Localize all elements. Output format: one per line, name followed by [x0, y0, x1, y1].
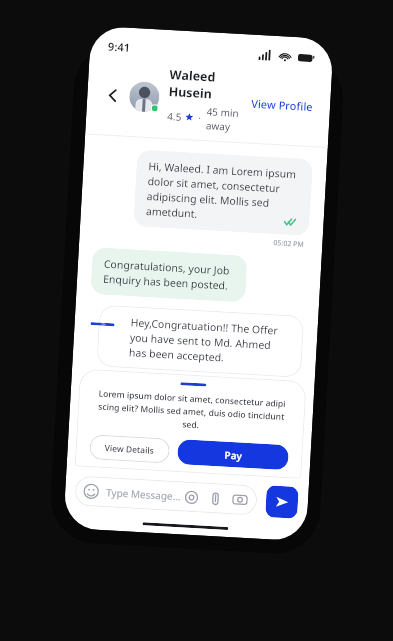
staticText: ·: [198, 111, 202, 125]
button[interactable]: Congratulations, your Job Enquiry has be…: [90, 247, 248, 303]
staticText: Waleed Husein: [168, 66, 250, 104]
staticText: View Profile: [251, 96, 313, 114]
staticText: 05:02 PM: [273, 238, 305, 250]
staticText: Lorem ipsum dolor sit amet, consectetur …: [91, 387, 292, 436]
staticText: View Details: [104, 442, 155, 457]
button[interactable]: Emoji: [74, 475, 258, 516]
button[interactable]: Send: [265, 485, 299, 519]
button[interactable]: Hey,Congratuation!! The Offer you have s…: [96, 304, 304, 378]
staticText: Congratulations, your Job Enquiry has be…: [103, 257, 235, 293]
staticText: Hey,Congratuation!! The Offer you have s…: [129, 315, 292, 368]
button[interactable]: Hi, Waleed. I am Lorem ipsum dolor sit a…: [133, 149, 313, 236]
button[interactable]: Back: [99, 81, 126, 109]
other: Emoji: [83, 483, 100, 500]
button[interactable]: Camera: [233, 492, 247, 507]
button[interactable]: View Profile: [247, 91, 317, 118]
staticText: Pay: [224, 448, 243, 463]
staticText: Hi, Waleed. I am Lorem ipsum dolor sit a…: [146, 159, 301, 226]
button[interactable]: View Details: [89, 434, 170, 464]
button[interactable]: Expand details: [180, 382, 206, 386]
button[interactable]: Record voice: [185, 491, 198, 504]
staticText: 4.5: [167, 109, 183, 124]
staticText: 9:41: [108, 39, 130, 55]
staticText: Type Message...: [106, 485, 181, 503]
staticText: 45 min away: [205, 104, 248, 134]
button[interactable]: Pay: [177, 439, 289, 470]
button[interactable]: Attach file: [209, 492, 222, 506]
